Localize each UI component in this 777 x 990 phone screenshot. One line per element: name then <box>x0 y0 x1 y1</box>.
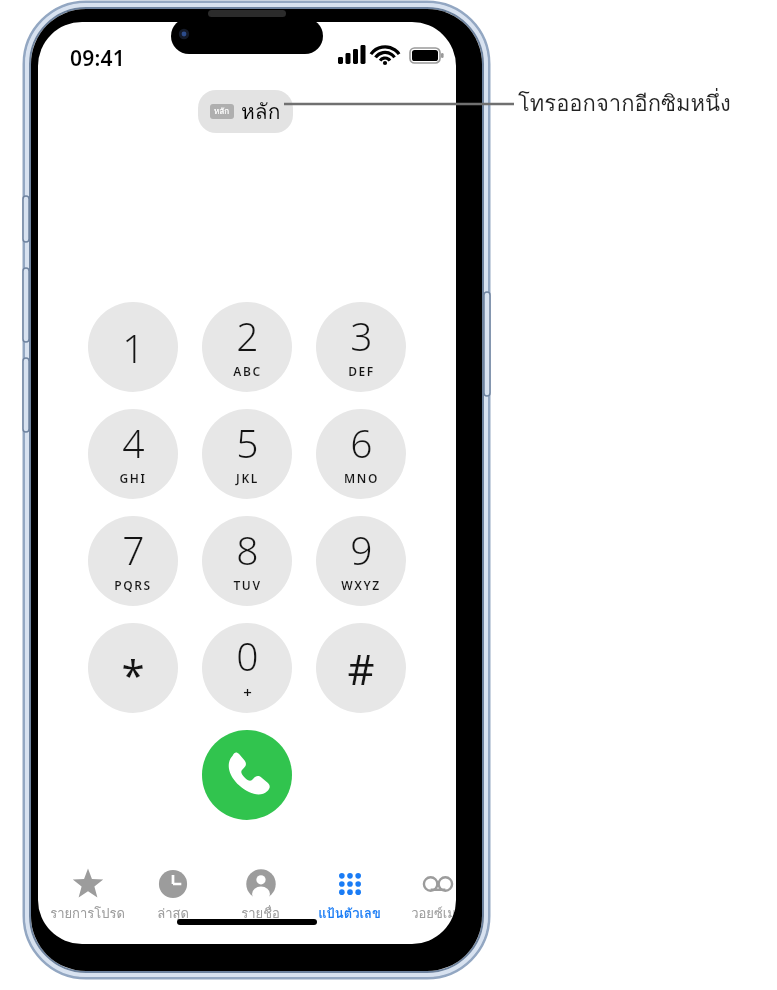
button[interactable]: 8 <box>202 516 292 606</box>
staticText: * <box>121 646 145 703</box>
button[interactable]: # <box>316 623 406 713</box>
staticText: + <box>243 682 252 702</box>
staticText: ABC <box>233 363 262 379</box>
button[interactable]: 7 <box>88 516 178 606</box>
staticText: โทรออกจากอีกซิมหนึ่ง <box>518 86 731 121</box>
staticText: หลัก <box>214 105 230 118</box>
staticText: 0 <box>236 629 259 682</box>
staticText: 09:41 <box>70 44 125 73</box>
staticText: DEF <box>348 363 375 379</box>
staticText: 5 <box>236 416 259 469</box>
button[interactable]: 1 <box>88 302 178 392</box>
button[interactable]: * <box>88 623 178 713</box>
button[interactable]: วอยซ์เมล <box>394 868 456 934</box>
staticText: 1 <box>122 321 145 374</box>
staticText: ล่าสุด <box>157 903 189 924</box>
staticText: WXYZ <box>341 577 381 593</box>
button[interactable]: รายชื่อ <box>217 868 303 934</box>
staticText: 7 <box>122 523 145 576</box>
button[interactable]: รายการโปรด <box>44 868 130 934</box>
staticText: 8 <box>236 523 259 576</box>
button[interactable]: 4 <box>88 409 178 499</box>
staticText: # <box>347 640 375 697</box>
button[interactable]: 0 <box>202 623 292 713</box>
staticText: MNO <box>344 470 379 486</box>
staticText: วอยซ์เมล <box>411 903 456 924</box>
button[interactable]: 6 <box>316 409 406 499</box>
button[interactable]: หลัก <box>198 90 293 133</box>
staticText: TUV <box>233 577 262 593</box>
button[interactable]: 2 <box>202 302 292 392</box>
button[interactable]: Call <box>202 730 292 820</box>
staticText: รายชื่อ <box>241 903 280 924</box>
staticText: 6 <box>350 416 373 469</box>
button[interactable]: แป้นตัวเลข <box>306 868 392 934</box>
button[interactable]: 9 <box>316 516 406 606</box>
staticText: หลัก <box>241 95 281 128</box>
staticText: 3 <box>350 309 373 362</box>
staticText: 2 <box>236 309 259 362</box>
staticText: รายการโปรด <box>50 903 125 924</box>
staticText: JKL <box>236 470 259 486</box>
staticText: GHI <box>119 470 147 486</box>
staticText: แป้นตัวเลข <box>318 903 381 924</box>
button[interactable]: 3 <box>316 302 406 392</box>
button[interactable]: ล่าสุด <box>130 868 216 934</box>
button[interactable]: 5 <box>202 409 292 499</box>
staticText: PQRS <box>114 577 152 593</box>
staticText: 9 <box>350 523 373 576</box>
staticText: 4 <box>122 416 145 469</box>
